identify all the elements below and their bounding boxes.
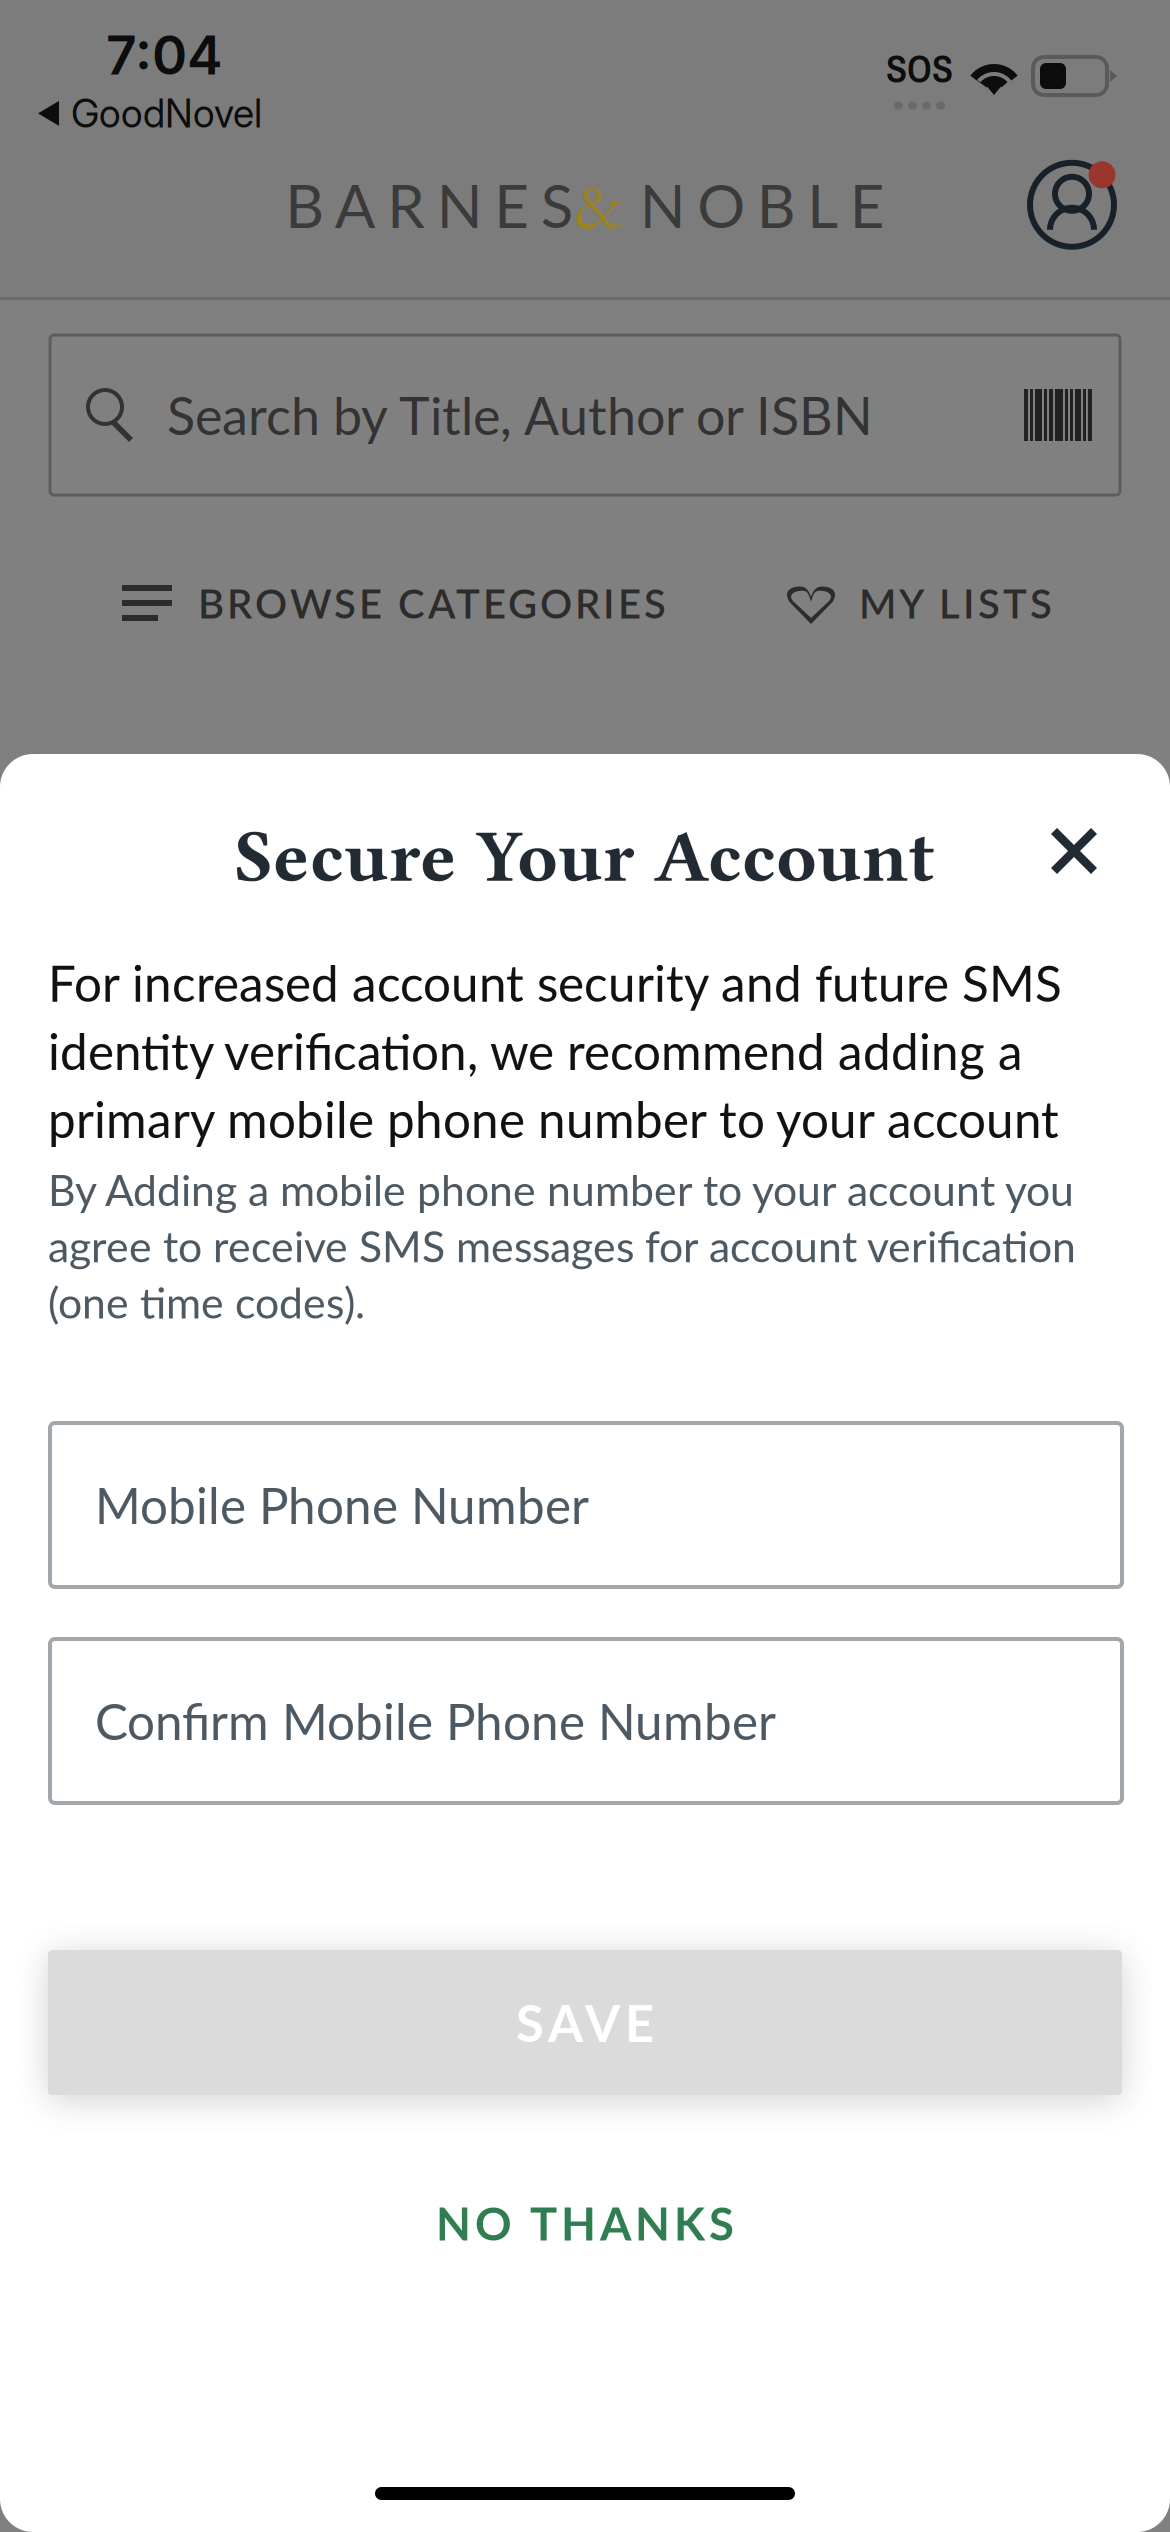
staticText: Search by Title, Author or ISBN — [167, 384, 873, 446]
staticText: Mobile Phone Number — [95, 1475, 589, 1535]
button[interactable]: MY LISTS — [785, 579, 1170, 627]
button[interactable]: BROWSE CATEGORIES — [0, 579, 666, 627]
button[interactable]: SAVE — [48, 1950, 1122, 2095]
staticText: For increased account security and futur… — [48, 953, 1062, 1149]
staticText: 7:04 — [106, 23, 223, 87]
button[interactable]: Account — [1026, 159, 1118, 251]
staticText: BROWSE CATEGORIES — [198, 579, 666, 627]
staticText: MY LISTS — [859, 579, 1052, 627]
staticText: By Adding a mobile phone number to your … — [48, 1164, 1076, 1328]
staticText: GoodNovel — [71, 90, 262, 137]
staticText: Secure Your Account — [235, 814, 935, 899]
button[interactable]: Search by Title, Author or ISBN — [50, 335, 1120, 495]
staticText: NO THANKS — [436, 2196, 734, 2250]
staticText: NOBLE — [640, 169, 885, 241]
button[interactable]: Mobile Phone Number — [50, 1423, 1122, 1587]
staticText: SOS — [886, 42, 953, 95]
button[interactable]: GoodNovel — [38, 90, 262, 137]
staticText: Confirm Mobile Phone Number — [95, 1691, 776, 1751]
button[interactable]: Confirm Mobile Phone Number — [50, 1639, 1122, 1803]
button[interactable]: Close — [1033, 810, 1115, 892]
button[interactable]: NO THANKS — [0, 2177, 1170, 2269]
staticText: & — [574, 161, 624, 248]
staticText: SAVE — [516, 1992, 654, 2053]
staticText: BARNES — [285, 169, 574, 241]
